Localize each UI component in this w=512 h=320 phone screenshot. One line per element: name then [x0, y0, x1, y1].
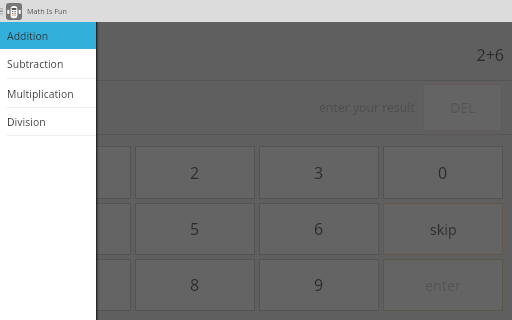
button[interactable]: 1 [12, 146, 131, 199]
button[interactable]: Open navigation drawer [0, 0, 6, 22]
button[interactable]: 9 [259, 259, 379, 311]
button[interactable]: enter [383, 259, 503, 311]
staticText: 5 [190, 218, 200, 240]
staticText: Subtraction [7, 57, 64, 71]
staticText: enter your result [319, 99, 415, 116]
staticText: Multiplication [7, 87, 74, 101]
button[interactable]: Multiplication [0, 79, 96, 108]
staticText: 6 [314, 218, 324, 240]
staticText: 9 [314, 274, 324, 296]
button[interactable]: Addition [0, 22, 96, 49]
staticText: 2 [190, 162, 200, 184]
button[interactable]: 6 [259, 203, 379, 255]
staticText: 3 [314, 162, 324, 184]
staticText: DEL [450, 98, 476, 117]
staticText: enter [425, 276, 461, 295]
staticText: Division [7, 115, 46, 129]
staticText: 2+6 [0, 44, 504, 66]
button[interactable]: 3 [259, 146, 379, 199]
button[interactable]: 5 [135, 203, 255, 255]
staticText: 8 [190, 274, 200, 296]
staticText: Math Is Fun [27, 6, 67, 16]
button[interactable]: 0 [383, 146, 503, 199]
button[interactable]: DEL [423, 84, 502, 131]
staticText: 0 [438, 162, 448, 184]
button[interactable]: 2 [135, 146, 255, 199]
button[interactable]: 4 [12, 203, 131, 255]
button[interactable]: Division [0, 108, 96, 136]
staticText: skip [430, 220, 457, 239]
staticText: Addition [7, 29, 49, 43]
button[interactable]: 7 [12, 259, 131, 311]
button[interactable]: 8 [135, 259, 255, 311]
button[interactable]: Subtraction [0, 49, 96, 79]
button[interactable]: skip [383, 203, 503, 255]
